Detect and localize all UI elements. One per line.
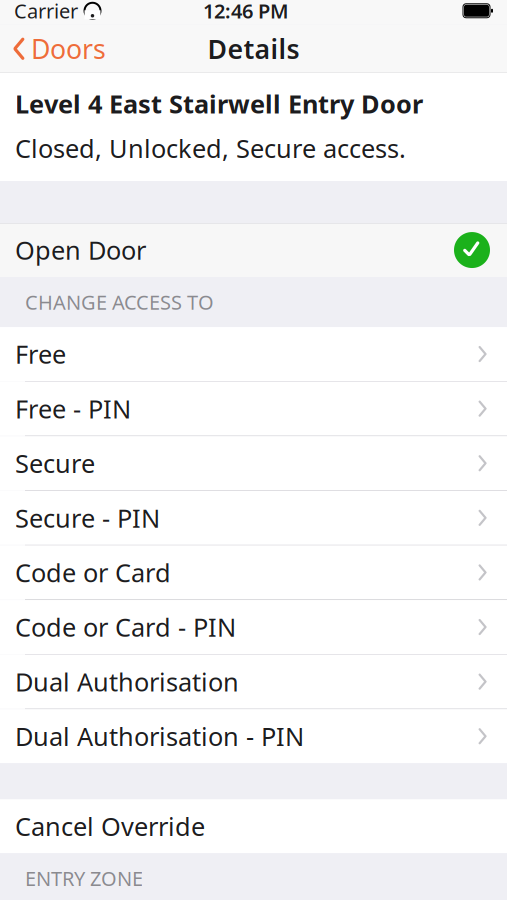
button[interactable]: Cancel Override: [0, 799, 507, 853]
staticText: Code or Card: [15, 556, 171, 589]
button[interactable]: Free - PIN: [0, 382, 507, 436]
staticText: ENTRY ZONE: [25, 865, 143, 892]
button[interactable]: Secure - PIN: [0, 491, 507, 545]
staticText: Secure: [15, 446, 95, 480]
staticText: CHANGE ACCESS TO: [25, 289, 214, 315]
staticText: Secure - PIN: [15, 501, 160, 535]
staticText: Closed, Unlocked, Secure access.: [15, 131, 406, 165]
button[interactable]: Code or Card: [0, 545, 507, 599]
staticText: Dual Authorisation - PIN: [15, 719, 304, 753]
button[interactable]: Doors: [0, 27, 118, 71]
button[interactable]: Open Door: [0, 223, 507, 277]
staticText: Code or Card - PIN: [15, 610, 236, 644]
staticText: Open Door: [15, 233, 146, 267]
staticText: Level 4 East Stairwell Entry Door: [15, 87, 423, 120]
button[interactable]: Free: [0, 327, 507, 381]
button[interactable]: Dual Authorisation: [0, 655, 507, 709]
button[interactable]: Secure: [0, 436, 507, 490]
staticText: Carrier: [14, 0, 78, 24]
staticText: Details: [207, 31, 299, 66]
staticText: Dual Authorisation: [15, 665, 239, 698]
staticText: Cancel Override: [15, 809, 205, 843]
button[interactable]: Code or Card - PIN: [0, 600, 507, 654]
staticText: Free - PIN: [15, 392, 131, 425]
staticText: 12:46 PM: [203, 0, 289, 24]
staticText: Free: [15, 337, 66, 371]
staticText: Doors: [31, 31, 106, 66]
button[interactable]: Dual Authorisation - PIN: [0, 709, 507, 763]
